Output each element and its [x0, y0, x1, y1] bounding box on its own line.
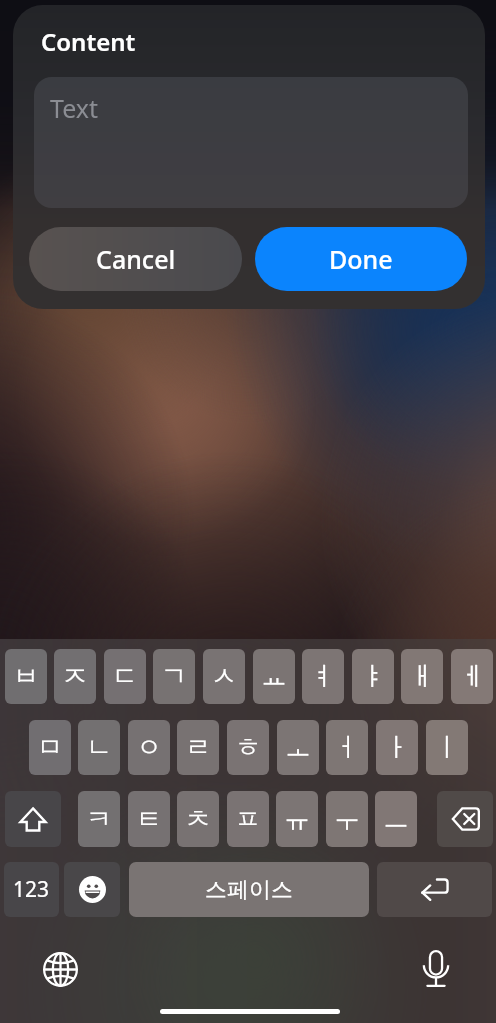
staticText: ㅍ [235, 803, 261, 836]
staticText: ㅐ [409, 660, 435, 693]
staticText: ㅊ [185, 803, 211, 836]
button[interactable]: ㄱ [153, 649, 195, 704]
button[interactable]: Numbers [4, 862, 59, 917]
staticText: ㅌ [136, 803, 162, 836]
staticText: ㅏ [384, 731, 410, 764]
button[interactable]: ㅇ [128, 720, 170, 775]
button[interactable]: ㅂ [5, 649, 47, 704]
button[interactable]: ㅋ [78, 791, 120, 847]
button[interactable]: Voice input [410, 939, 462, 989]
button[interactable]: ㅏ [376, 720, 418, 775]
button[interactable]: ㅠ [276, 791, 318, 847]
staticText: ㅕ [310, 660, 336, 693]
button[interactable]: ㅡ [375, 791, 417, 847]
button[interactable]: ㅁ [29, 720, 71, 775]
button[interactable]: ㅑ [352, 649, 394, 704]
button[interactable]: ㅗ [277, 720, 319, 775]
staticText: ㅓ [334, 731, 360, 764]
staticText: ㅔ [459, 660, 485, 693]
button[interactable]: ㄹ [177, 720, 219, 775]
button[interactable]: ㅅ [203, 649, 245, 704]
staticText: ㅂ [13, 660, 39, 693]
button[interactable]: Change keyboard language [36, 945, 84, 993]
button[interactable]: ㅣ [426, 720, 468, 775]
staticText: Content [41, 25, 136, 58]
staticText: ㄴ [86, 731, 112, 764]
button[interactable]: ㅍ [227, 791, 269, 847]
staticText: ㄹ [185, 731, 211, 764]
button[interactable]: ㅜ [326, 791, 368, 847]
staticText: ㅛ [261, 660, 287, 693]
button[interactable]: 스페이스 [129, 862, 369, 917]
button[interactable]: Shift [5, 791, 61, 847]
button[interactable]: Enter [377, 862, 492, 917]
staticText: ㅡ [383, 803, 409, 836]
button[interactable]: ㅛ [253, 649, 295, 704]
staticText: ㅜ [334, 803, 360, 836]
staticText: Done [329, 242, 393, 276]
button[interactable]: ㅊ [177, 791, 219, 847]
button[interactable]: Done [255, 227, 467, 291]
button[interactable]: Cancel [29, 227, 242, 291]
staticText: ㅠ [284, 803, 310, 836]
staticText: ㅗ [285, 731, 311, 764]
staticText: 123 [13, 875, 50, 904]
button[interactable]: ㅈ [54, 649, 96, 704]
staticText: ㅋ [86, 803, 112, 836]
staticText: ㅇ [136, 731, 162, 764]
staticText: ㅣ [434, 731, 460, 764]
button[interactable]: ㄴ [78, 720, 120, 775]
staticText: Text [50, 91, 99, 125]
staticText: ㅎ [235, 731, 261, 764]
button[interactable]: Emoji [64, 862, 120, 917]
staticText: ㅑ [360, 660, 386, 693]
button[interactable]: Text [34, 77, 468, 208]
button[interactable]: Backspace [437, 791, 493, 847]
staticText: ㅈ [62, 660, 88, 693]
button[interactable]: ㅓ [326, 720, 368, 775]
button[interactable]: ㅐ [401, 649, 443, 704]
staticText: Cancel [96, 242, 176, 276]
staticText: ㅅ [211, 660, 237, 693]
button[interactable]: ㅔ [451, 649, 493, 704]
button[interactable]: ㅌ [128, 791, 170, 847]
button[interactable]: ㅕ [302, 649, 344, 704]
button[interactable]: ㄷ [104, 649, 146, 704]
staticText: ㅁ [37, 731, 63, 764]
staticText: ㄷ [112, 660, 138, 693]
button[interactable]: ㅎ [227, 720, 269, 775]
staticText: ㄱ [161, 660, 187, 693]
staticText: 스페이스 [205, 876, 293, 904]
